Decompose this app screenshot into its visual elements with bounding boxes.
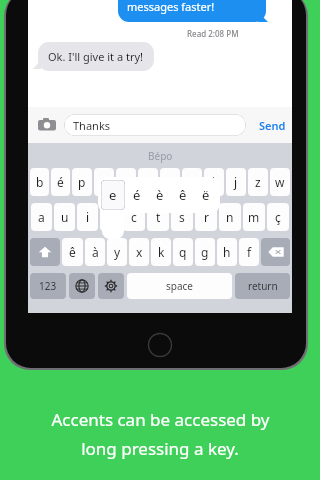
button[interactable]: return [235,273,290,299]
staticText: à [92,244,99,260]
staticText: messages faster! [127,0,215,14]
button[interactable]: p [72,168,92,196]
staticText: n [226,209,234,225]
button[interactable]: i [77,203,98,231]
button[interactable]: t [147,203,169,231]
button[interactable]: n [219,203,241,231]
button[interactable]: Keyboard settings [98,273,124,299]
staticText: ë [202,186,210,204]
button[interactable]: Backspace [261,238,290,266]
staticText: ê [69,244,76,260]
button[interactable]: d [182,168,202,196]
staticText: long pressing a key. [81,437,239,460]
button[interactable]: 123 [30,273,66,299]
button[interactable]: k [151,238,171,266]
staticText: i [86,209,90,225]
button[interactable]: ç [267,203,289,231]
staticText: è [123,174,130,190]
button[interactable]: m [243,203,265,231]
staticText: l [212,174,216,190]
staticText: ç [275,209,281,225]
button[interactable]: Send [259,118,286,133]
staticText: e [107,209,114,225]
staticText: é [133,186,141,204]
staticText: r [204,209,209,225]
staticText: e [109,186,117,204]
staticText: é [57,174,64,190]
staticText: ê [179,186,187,204]
staticText: return [248,279,278,293]
button[interactable]: f [239,238,259,266]
button[interactable]: Thanks [64,114,246,136]
staticText: Thanks [73,118,111,133]
button[interactable]: u [54,203,75,231]
button[interactable]: y [107,238,127,266]
staticText: h [223,244,231,260]
button[interactable]: q [173,238,193,266]
staticText: q [179,244,187,260]
button[interactable]: v [160,168,180,196]
button[interactable]: o [94,168,114,196]
staticText: Ok. I'll give it a try! [48,49,144,64]
staticText: Bépo [148,149,173,163]
staticText: g [201,244,209,260]
staticText: m [248,209,260,225]
button[interactable]: e [98,177,220,213]
button[interactable]: h [217,238,237,266]
staticText: t [156,209,161,225]
staticText: Read 2:08 PM [187,28,239,39]
staticText: è [156,186,164,204]
staticText: b [36,174,44,190]
button[interactable]: ê [62,238,83,266]
staticText: w [275,174,285,190]
button[interactable]: a [31,203,52,231]
staticText: c [131,209,137,225]
staticText: z [255,174,261,190]
staticText: j [234,174,238,190]
staticText: f [247,244,252,260]
button[interactable]: Switch language [69,273,95,299]
button[interactable]: g [195,238,215,266]
staticText: k [158,244,165,260]
button[interactable]: Shift [30,238,60,266]
button[interactable]: é [51,168,70,196]
staticText: a [38,209,45,225]
staticText: Accents can be accessed by [51,408,270,431]
staticText: p [78,174,86,190]
button[interactable]: x [129,238,149,266]
button[interactable]: è [116,168,136,196]
staticText: u [61,209,69,225]
staticText: 123 [39,279,57,293]
staticText: x [136,244,143,260]
button[interactable]: r [195,203,217,231]
staticText: y [114,244,121,260]
button[interactable]: Camera [36,114,58,136]
button[interactable]: e [100,203,121,231]
staticText: Send [259,118,286,133]
button[interactable]: b [30,168,49,196]
staticText: o [100,174,108,190]
button[interactable]: z [248,168,268,196]
staticText: space [166,279,193,293]
button[interactable]: j [226,168,246,196]
button[interactable]: à [85,238,105,266]
button[interactable]: s [171,203,193,231]
button[interactable]: l [204,168,224,196]
button[interactable]: c [123,203,145,231]
button[interactable]: space [127,273,232,299]
staticText: s [179,209,185,225]
button[interactable]: w [270,168,290,196]
button[interactable]: ^ [138,168,158,196]
